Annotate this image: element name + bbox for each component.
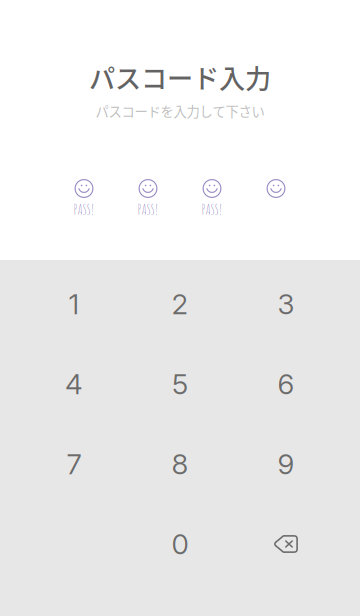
staticText: PASS!	[137, 200, 158, 218]
staticText: パスコード入力	[89, 58, 271, 96]
staticText: 2	[171, 287, 188, 321]
button[interactable]: 9	[233, 424, 339, 504]
staticText: 5	[172, 367, 188, 401]
staticText: 1	[68, 287, 79, 321]
button[interactable]: 8	[127, 424, 233, 504]
staticText: 8	[171, 447, 188, 481]
staticText: パスコードを入力して下さい	[95, 101, 264, 121]
button[interactable]: 4	[21, 344, 127, 424]
staticText: 7	[66, 447, 81, 481]
staticText: PASS!	[201, 200, 222, 218]
staticText: 6	[277, 367, 294, 401]
button[interactable]: 3	[233, 264, 339, 344]
staticText: 9	[277, 447, 294, 481]
staticText: PASS!	[73, 200, 94, 218]
staticText: 3	[277, 287, 294, 321]
button[interactable]: Delete	[233, 504, 339, 584]
button[interactable]: 5	[127, 344, 233, 424]
button[interactable]: 2	[127, 264, 233, 344]
button[interactable]: 0	[127, 504, 233, 584]
staticText: 0	[171, 527, 188, 561]
button[interactable]: 1	[21, 264, 127, 344]
staticText: 4	[65, 367, 83, 401]
button[interactable]: 7	[21, 424, 127, 504]
button[interactable]: 6	[233, 344, 339, 424]
